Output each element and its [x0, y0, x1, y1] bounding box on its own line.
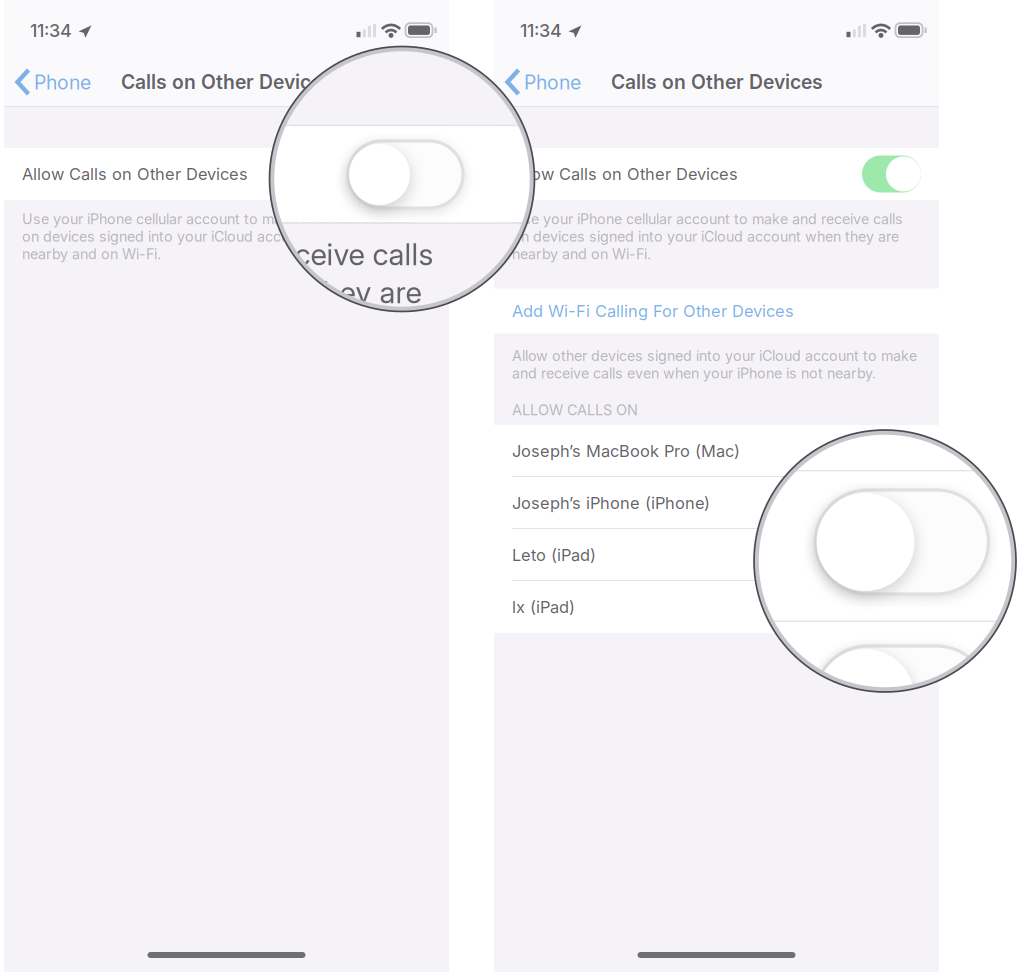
- staticText: Allow Calls on Other Devices: [512, 164, 738, 184]
- button[interactable]: Joseph’s MacBook Pro (Mac): [494, 425, 939, 477]
- button[interactable]: Allow Calls on Other Devices, on: [862, 155, 921, 192]
- staticText: on devices signed into your iCloud accou…: [22, 228, 409, 245]
- staticText: lx (iPad): [512, 597, 575, 617]
- staticText: nearby and on Wi-Fi.: [22, 245, 161, 263]
- staticText: nearby and on Wi-Fi.: [512, 245, 651, 263]
- staticText: Leto (iPad): [512, 545, 596, 565]
- staticText: Allow Calls on Other Devices: [22, 164, 248, 184]
- staticText: ALLOW CALLS ON: [512, 401, 638, 419]
- staticText: hey are: [322, 275, 421, 310]
- staticText: 11:34: [30, 20, 72, 41]
- button[interactable]: lx (iPad): [494, 581, 939, 633]
- staticText: Calls on Other Devices: [611, 70, 823, 94]
- staticText: Use your iPhone cellular account to make…: [512, 210, 903, 228]
- staticText: Use your iPhone cellular account to make…: [22, 210, 413, 228]
- staticText: and receive calls even when your iPhone …: [512, 365, 876, 382]
- button[interactable]: Add Wi-Fi Calling For Other Devices: [494, 288, 939, 333]
- button[interactable]: Allow Calls on Other Devices: [494, 148, 939, 200]
- staticText: Joseph’s iPhone (iPhone): [512, 493, 710, 513]
- staticText: Phone: [34, 71, 91, 94]
- staticText: on devices signed into your iCloud accou…: [512, 228, 899, 245]
- staticText: Allow other devices signed into your iCl…: [512, 347, 917, 364]
- button[interactable]: Joseph’s iPhone (iPhone): [494, 477, 939, 529]
- staticText: ceive calls: [294, 237, 433, 272]
- staticText: Phone: [524, 71, 581, 94]
- staticText: Joseph’s MacBook Pro (Mac): [512, 441, 740, 461]
- staticText: Add Wi-Fi Calling For Other Devices: [512, 301, 794, 321]
- staticText: Calls on Other Devices: [121, 70, 333, 94]
- button[interactable]: Allow Calls on Other Devices: [4, 148, 449, 200]
- button[interactable]: Leto (iPad): [494, 529, 939, 581]
- button[interactable]: Back to Phone: [10, 63, 114, 101]
- button[interactable]: Back to Phone: [500, 63, 604, 101]
- staticText: 11:34: [520, 20, 562, 41]
